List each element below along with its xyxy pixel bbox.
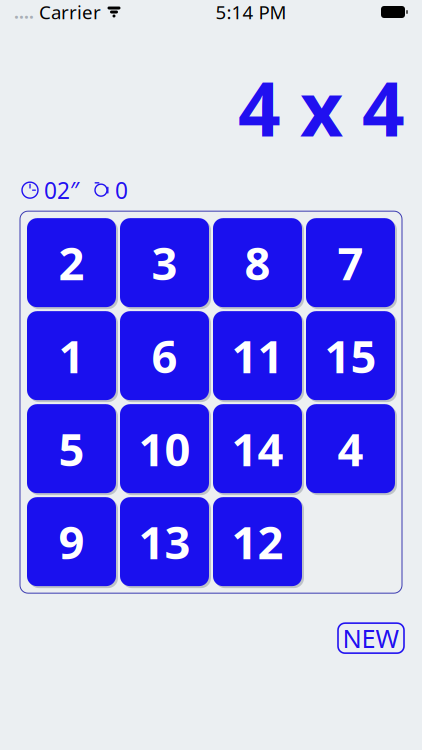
- button[interactable]: 2: [27, 218, 116, 307]
- staticText: Carrier: [39, 0, 101, 24]
- staticText: 11: [231, 326, 283, 386]
- button[interactable]: 15: [306, 311, 395, 400]
- button[interactable]: NEW: [338, 623, 404, 653]
- staticText: 1: [58, 326, 84, 386]
- staticText: 9: [58, 512, 84, 572]
- staticText: 7: [337, 233, 363, 293]
- button[interactable]: 13: [120, 497, 209, 586]
- button[interactable]: 5: [27, 404, 116, 493]
- staticText: 10: [138, 419, 190, 479]
- staticText: ....: [14, 0, 34, 23]
- staticText: 15: [324, 326, 376, 386]
- button[interactable]: 7: [306, 218, 395, 307]
- button[interactable]: 11: [213, 311, 302, 400]
- button[interactable]: 1: [27, 311, 116, 400]
- staticText: 02″: [44, 175, 79, 205]
- staticText: 5:14 PM: [215, 0, 286, 24]
- staticText: 12: [231, 512, 283, 572]
- button[interactable]: 8: [213, 218, 302, 307]
- button[interactable]: 4: [306, 404, 395, 493]
- staticText: 4 x 4: [238, 58, 405, 157]
- staticText: 8: [244, 233, 270, 293]
- button[interactable]: 9: [27, 497, 116, 586]
- staticText: 6: [151, 326, 177, 386]
- button[interactable]: 10: [120, 404, 209, 493]
- staticText: 4: [337, 419, 363, 479]
- staticText: 2: [58, 233, 84, 293]
- staticText: 3: [151, 233, 177, 293]
- staticText: 5: [58, 419, 84, 479]
- staticText: 14: [231, 419, 283, 479]
- staticText: 13: [138, 512, 190, 572]
- staticText: 0: [115, 175, 128, 205]
- button[interactable]: 14: [213, 404, 302, 493]
- button[interactable]: 3: [120, 218, 209, 307]
- staticText: NEW: [342, 621, 399, 655]
- button[interactable]: 12: [213, 497, 302, 586]
- button[interactable]: 6: [120, 311, 209, 400]
